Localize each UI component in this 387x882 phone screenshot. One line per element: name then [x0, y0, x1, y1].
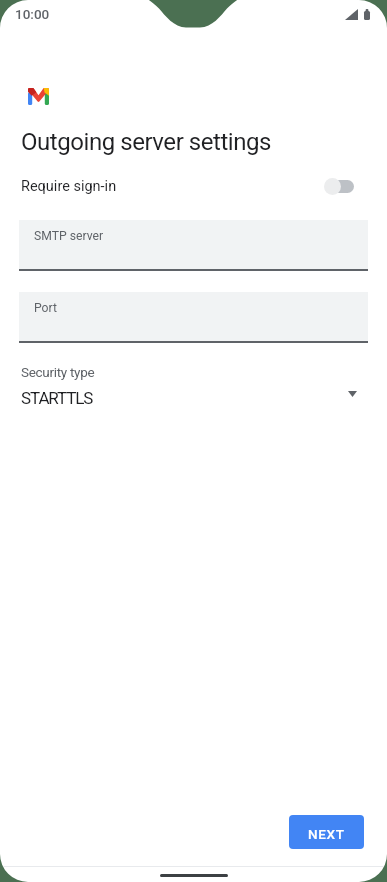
staticText: Port [34, 301, 57, 315]
staticText: SMTP server [34, 229, 104, 243]
other: Require sign-in toggle [324, 177, 354, 195]
button[interactable]: NEXT [289, 815, 364, 849]
button[interactable]: Require sign-in [0, 169, 387, 203]
staticText: NEXT [308, 826, 345, 842]
staticText: 10:00 [15, 6, 50, 22]
staticText: Outgoing server settings [21, 128, 271, 156]
staticText: Require sign-in [21, 178, 117, 195]
button[interactable]: SMTP server [19, 220, 368, 271]
button[interactable]: Security type [0, 364, 387, 408]
staticText: STARTTLS [21, 388, 93, 408]
button[interactable]: Port [19, 292, 368, 343]
staticText: Security type [21, 364, 95, 380]
